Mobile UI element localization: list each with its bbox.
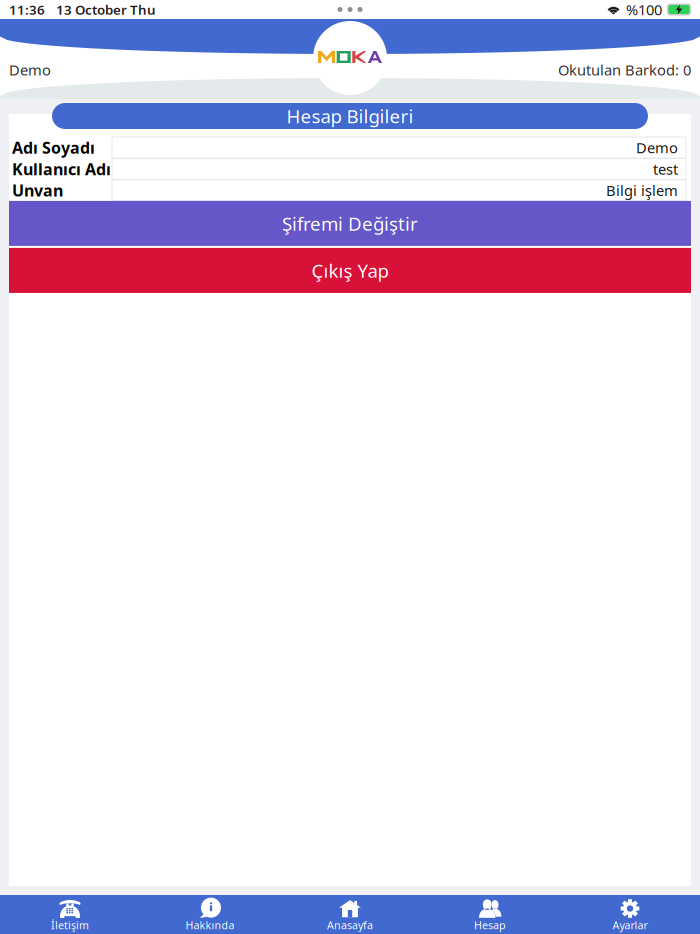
button[interactable]: Şifremi Değiştir (9, 201, 691, 246)
staticText: %100 (626, 0, 662, 19)
button[interactable]: İletişim (0, 895, 140, 934)
staticText: 13 October Thu (56, 1, 156, 18)
staticText: Anasayfa (327, 918, 373, 932)
staticText: Hesap Bilgileri (286, 104, 413, 128)
staticText: Kullanıcı Adı (12, 158, 111, 179)
staticText: 11:36 (9, 1, 45, 18)
button[interactable]: Ayarlar (560, 895, 700, 934)
staticText: Çıkış Yap (311, 258, 388, 283)
staticText: Okutulan Barkod: 0 (558, 60, 691, 79)
button[interactable]: Çıkış Yap (9, 248, 691, 293)
staticText: Hesap (474, 918, 506, 932)
staticText: Unvan (12, 180, 63, 201)
staticText: Şifremi Değiştir (282, 211, 418, 236)
staticText: Bilgi işlem (606, 180, 678, 200)
staticText: Hakkında (185, 918, 234, 932)
button[interactable]: Hakkında (140, 895, 280, 934)
button[interactable]: Hesap (420, 895, 560, 934)
staticText: Demo (636, 138, 678, 157)
staticText: Demo (9, 60, 51, 79)
button[interactable]: Hesap Bilgileri (52, 103, 648, 129)
button[interactable]: Anasayfa (280, 895, 420, 934)
staticText: Ayarlar (612, 918, 647, 932)
staticText: test (653, 159, 678, 179)
staticText: İletişim (51, 918, 89, 932)
staticText: Adı Soyadı (12, 137, 95, 158)
